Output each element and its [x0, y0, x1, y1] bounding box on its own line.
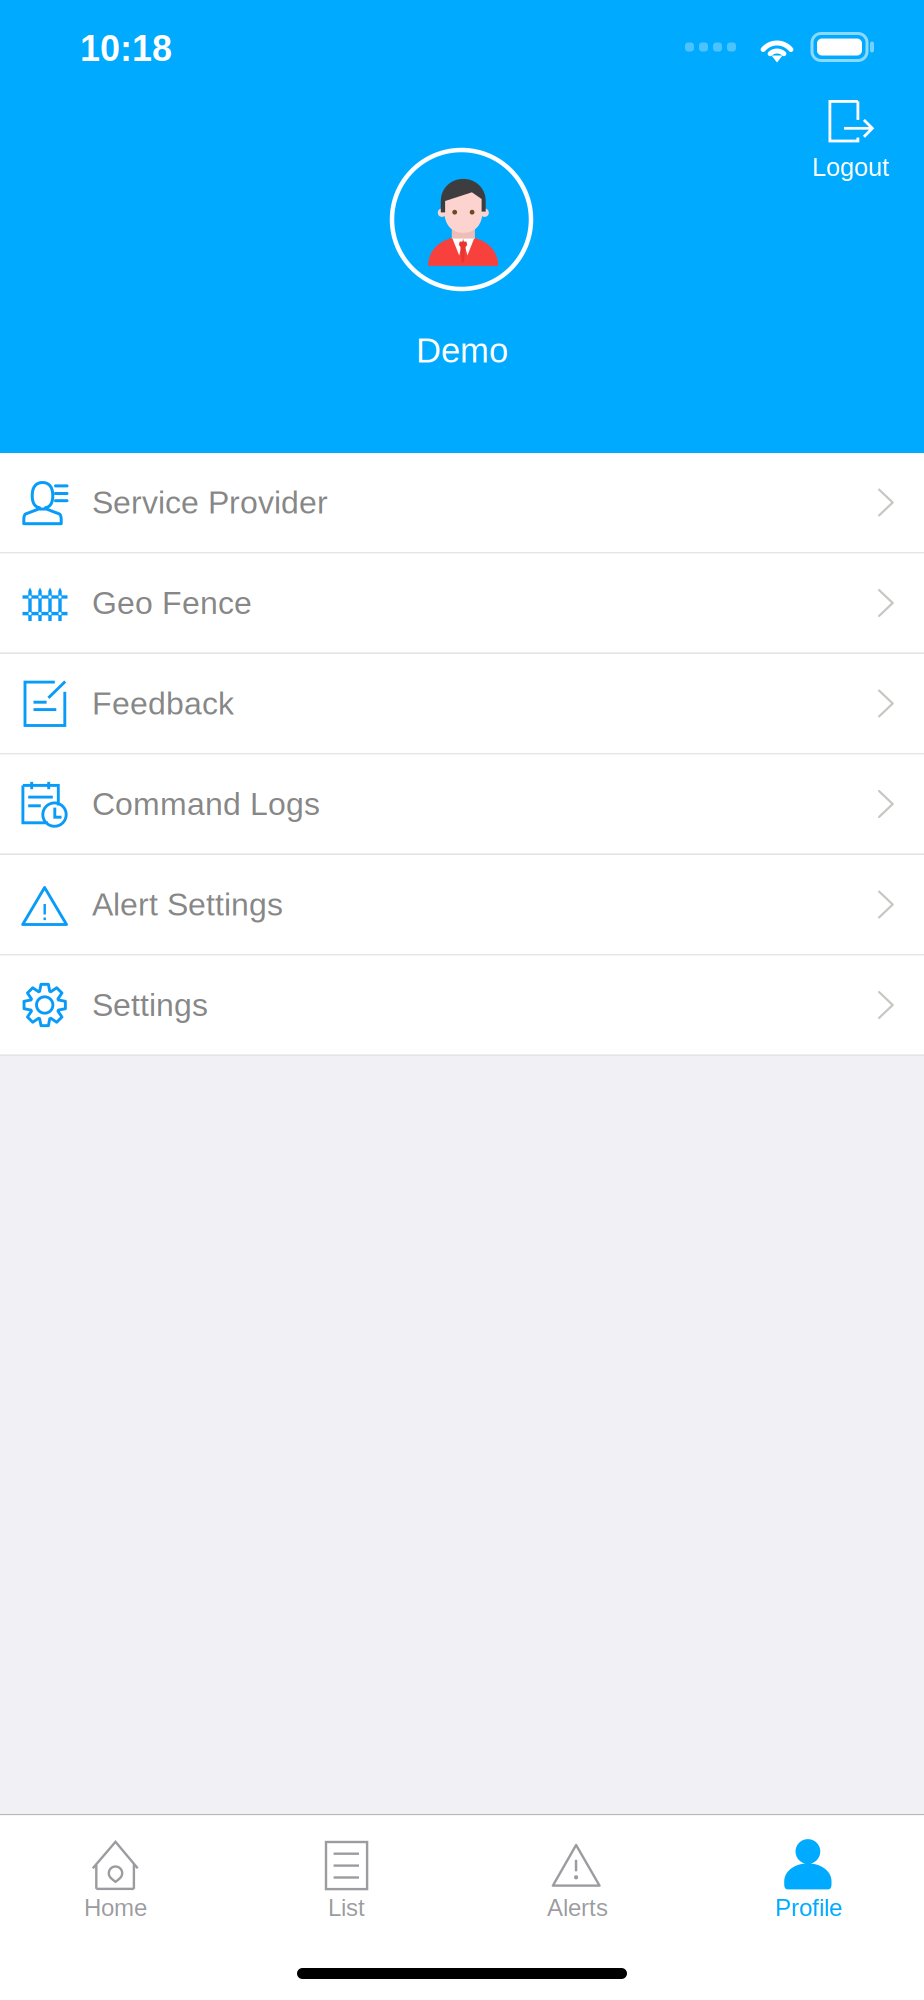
staticText: Alert Settings	[92, 887, 283, 922]
staticText: Alerts	[547, 1894, 608, 1921]
staticText: Geo Fence	[92, 585, 252, 621]
button[interactable]: Settings	[0, 955, 924, 1054]
button[interactable]: Feedback	[0, 654, 924, 753]
button[interactable]: Geo Fence	[0, 553, 924, 652]
staticText: List	[328, 1894, 365, 1921]
staticText: Command Logs	[92, 786, 320, 822]
staticText: Home	[84, 1894, 147, 1921]
staticText: Feedback	[92, 686, 234, 721]
staticText: Logout	[812, 153, 889, 181]
button[interactable]: Home	[0, 1815, 231, 1947]
staticText: Service Provider	[92, 485, 328, 520]
staticText: Demo	[416, 331, 508, 370]
button[interactable]: Logout	[800, 96, 901, 185]
button[interactable]: Service Provider	[0, 453, 924, 552]
button[interactable]: Alert Settings	[0, 855, 924, 954]
staticText: 10:18	[80, 28, 172, 69]
button[interactable]: Profile	[693, 1815, 924, 1947]
button[interactable]: Command Logs	[0, 754, 924, 853]
staticText: Settings	[92, 987, 208, 1023]
button[interactable]: List	[231, 1815, 462, 1947]
button[interactable]: Alerts	[462, 1815, 693, 1947]
staticText: Profile	[775, 1894, 842, 1921]
